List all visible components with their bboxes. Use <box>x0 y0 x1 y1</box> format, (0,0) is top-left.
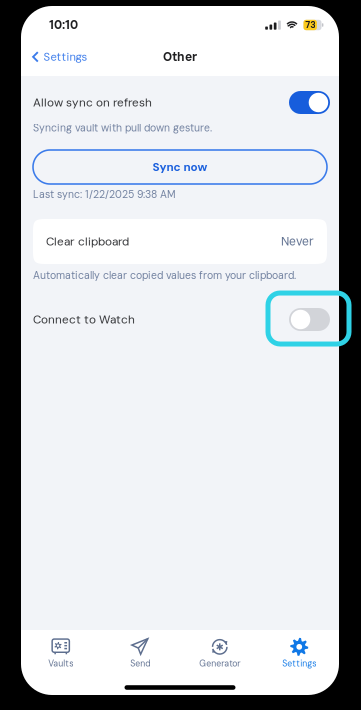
staticText: Allow sync on refresh <box>33 95 152 110</box>
staticText: Connect to Watch <box>33 312 135 327</box>
button[interactable]: Allow sync on refresh <box>289 91 330 114</box>
staticText: Automatically clear copied values from y… <box>33 269 296 282</box>
button[interactable]: Connect to Watch <box>289 308 330 331</box>
staticText: Never <box>281 234 314 249</box>
staticText: Vaults <box>48 658 73 669</box>
staticText: Settings <box>282 658 316 669</box>
staticText: 10:10 <box>49 17 78 33</box>
staticText: Syncing vault with pull down gesture. <box>33 121 212 135</box>
button[interactable]: Clear clipboard <box>33 219 327 264</box>
staticText: Settings <box>43 50 87 64</box>
button[interactable]: Vaults <box>21 630 100 674</box>
button[interactable]: Settings <box>21 44 95 70</box>
staticText: Send <box>130 658 150 669</box>
staticText: Last sync: 1/22/2025 9:38 AM <box>33 188 176 201</box>
button[interactable]: Sync now <box>33 150 327 184</box>
button[interactable]: Generator <box>180 630 259 674</box>
staticText: 73 <box>305 19 316 31</box>
button[interactable]: Settings <box>259 630 339 674</box>
staticText: Clear clipboard <box>46 234 129 249</box>
staticText: Sync now <box>152 159 207 174</box>
staticText: Generator <box>199 658 240 669</box>
staticText: Other <box>163 49 197 65</box>
button[interactable]: Send <box>100 630 180 674</box>
